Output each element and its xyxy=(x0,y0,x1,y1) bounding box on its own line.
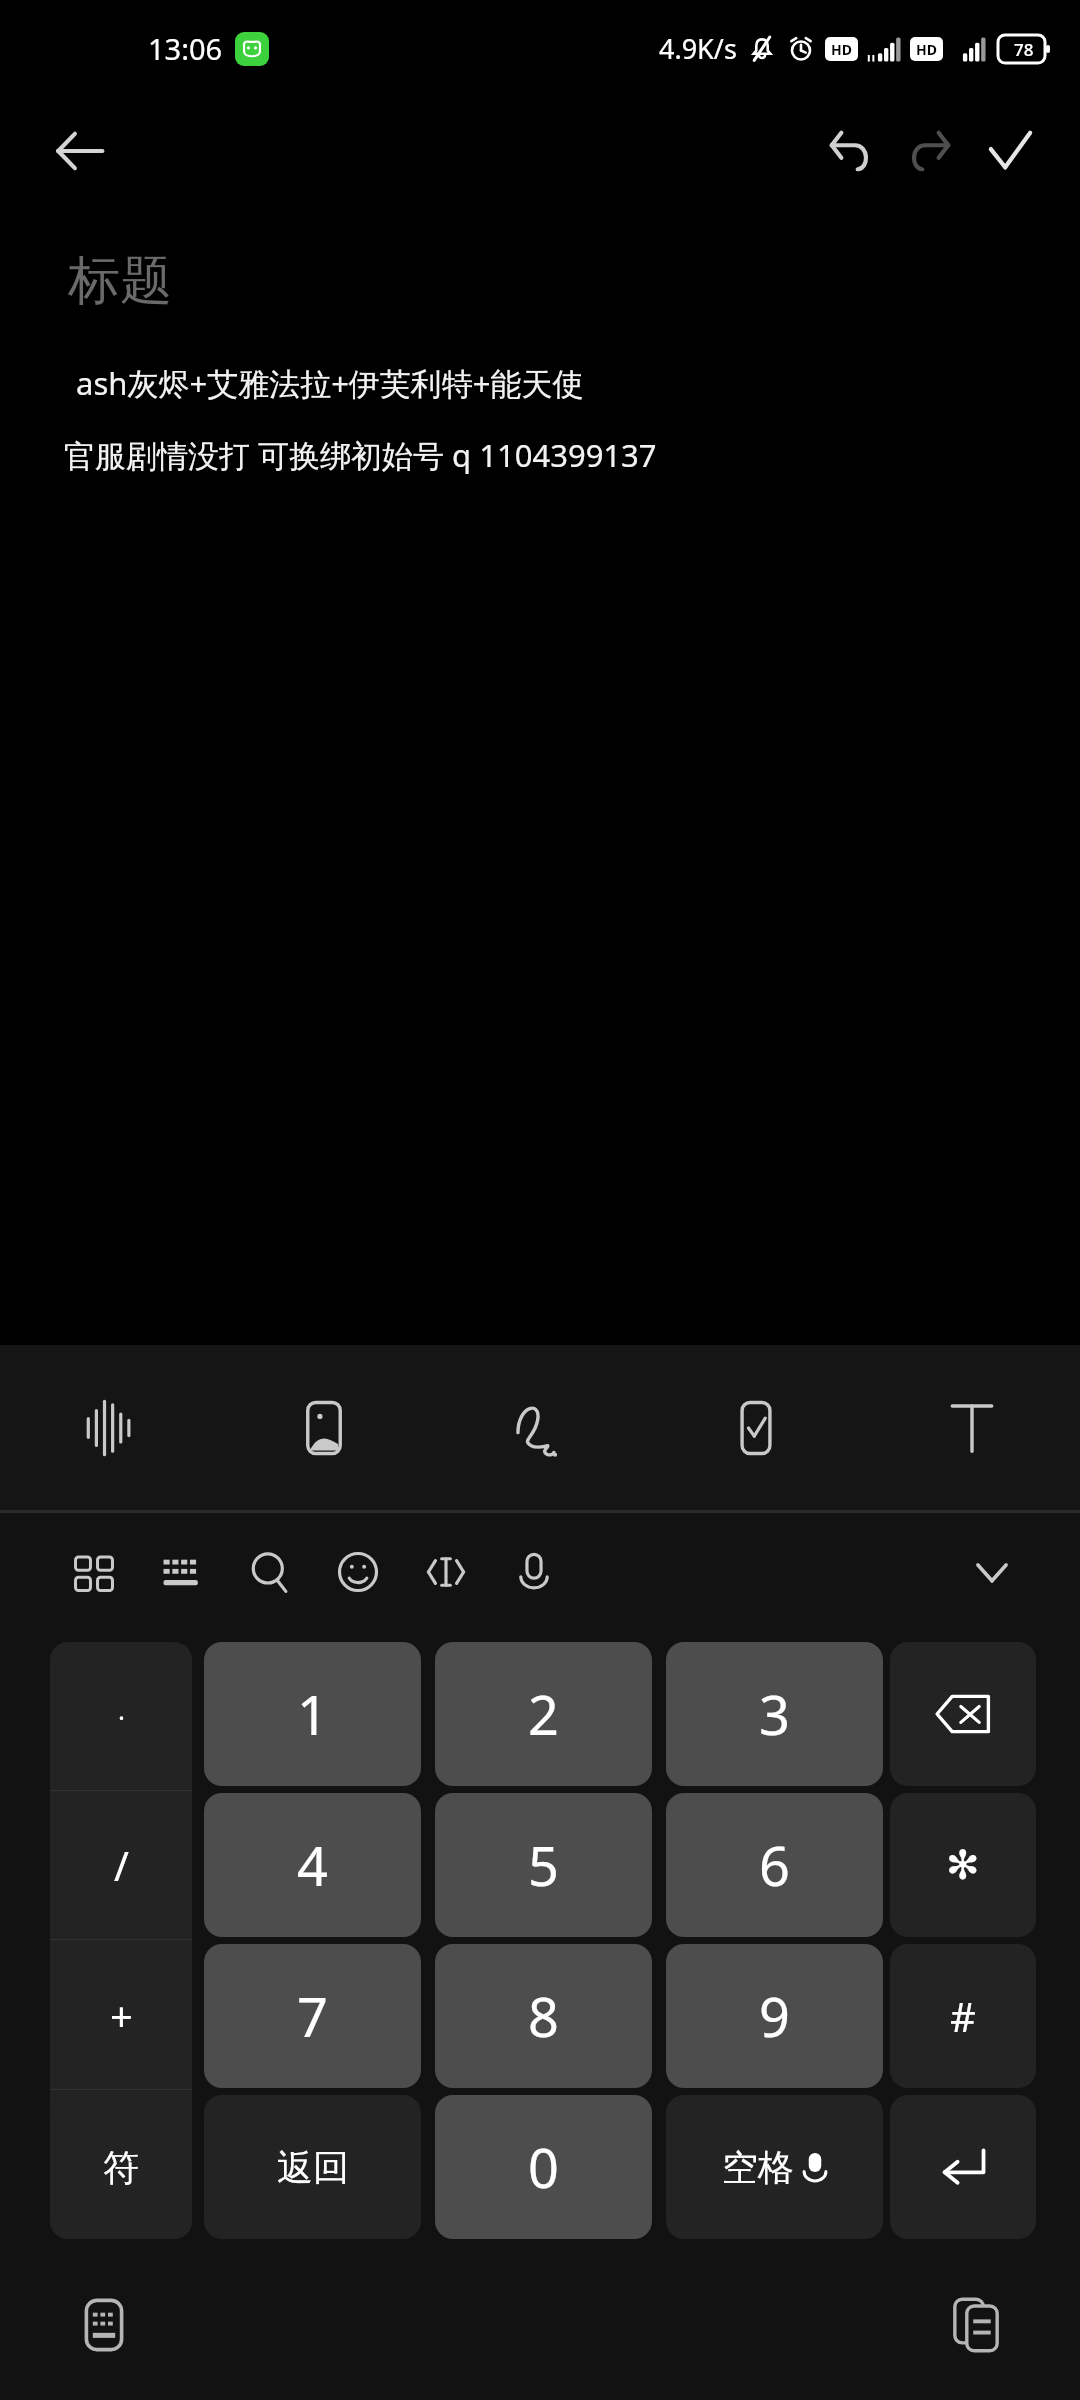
button[interactable]: Insert image xyxy=(216,1345,432,1510)
staticText: 4.9K/s xyxy=(659,30,737,67)
button[interactable]: Voice input xyxy=(490,1528,578,1616)
button[interactable]: Search xyxy=(226,1528,314,1616)
staticText: + xyxy=(110,1988,133,2042)
button[interactable]: 6 xyxy=(666,1793,883,1937)
button[interactable]: Back xyxy=(40,112,118,190)
staticText: 空格 xyxy=(722,2145,794,2190)
button[interactable]: 9 xyxy=(666,1944,883,2088)
button[interactable]: Text format xyxy=(864,1345,1080,1510)
button[interactable]: 7 xyxy=(204,1944,421,2088)
staticText: 符 xyxy=(103,2145,139,2190)
button[interactable]: · xyxy=(50,1642,192,1790)
button[interactable]: 5 xyxy=(435,1793,652,1937)
staticText: # xyxy=(950,1989,976,2043)
staticText: ash灰烬+艾雅法拉+伊芙利特+能天使 xyxy=(76,362,584,404)
staticText: 5 xyxy=(528,1828,559,1902)
staticText: ✻ xyxy=(946,1842,980,1889)
button[interactable]: Clipboard xyxy=(934,2283,1018,2367)
button[interactable]: 返回 xyxy=(204,2095,421,2239)
staticText: 9 xyxy=(759,1979,790,2053)
staticText: 0 xyxy=(528,2130,559,2204)
staticText: HD xyxy=(916,40,937,59)
button[interactable]: 4 xyxy=(204,1793,421,1937)
button[interactable]: Emoji xyxy=(314,1528,402,1616)
button[interactable]: Redo xyxy=(890,111,970,191)
button[interactable]: 0 xyxy=(435,2095,652,2239)
staticText: 7 xyxy=(297,1979,328,2053)
staticText: 4 xyxy=(297,1828,328,1902)
staticText: 3 xyxy=(759,1677,790,1751)
staticText: · xyxy=(118,1699,125,1734)
button[interactable]: Move cursor xyxy=(402,1528,490,1616)
button[interactable]: 2 xyxy=(435,1642,652,1786)
staticText: 2 xyxy=(528,1677,559,1751)
staticText: 标题 xyxy=(68,248,172,314)
button[interactable]: 8 xyxy=(435,1944,652,2088)
staticText: 8 xyxy=(528,1979,559,2053)
button[interactable]: 符 xyxy=(50,2095,192,2239)
button[interactable]: Keyboard xyxy=(62,2283,146,2367)
button[interactable]: 1 xyxy=(204,1642,421,1786)
button[interactable]: Enter xyxy=(890,2095,1036,2239)
button[interactable]: Done xyxy=(970,111,1050,191)
staticText: 1 xyxy=(297,1677,328,1751)
button[interactable]: － xyxy=(50,2090,192,2239)
staticText: － xyxy=(101,2140,141,2190)
button[interactable]: Switch keyboard xyxy=(138,1528,226,1616)
staticText: 13:06 xyxy=(148,29,223,68)
button[interactable]: Handwriting xyxy=(432,1345,648,1510)
staticText: / xyxy=(114,1838,129,1892)
staticText: 官服剧情没打 可换绑初始号 q 1104399137 xyxy=(64,434,657,476)
staticText: 返回 xyxy=(277,2145,349,2190)
staticText: 6 xyxy=(759,1828,790,1902)
button[interactable]: Hide keyboard xyxy=(948,1528,1036,1616)
button[interactable]: # xyxy=(890,1944,1036,2088)
button[interactable]: Checklist xyxy=(648,1345,864,1510)
staticText: HD xyxy=(831,40,852,59)
button[interactable]: Backspace xyxy=(890,1642,1036,1786)
button[interactable]: 空格 xyxy=(666,2095,883,2239)
button[interactable]: Record audio xyxy=(0,1345,216,1510)
button[interactable]: ✻ xyxy=(890,1793,1036,1937)
button[interactable]: + xyxy=(50,1940,192,2089)
button[interactable]: / xyxy=(50,1791,192,1939)
button[interactable]: Undo xyxy=(810,111,890,191)
button[interactable]: Keyboard layouts xyxy=(50,1528,138,1616)
staticText: 78 xyxy=(1014,38,1034,61)
button[interactable]: 3 xyxy=(666,1642,883,1786)
